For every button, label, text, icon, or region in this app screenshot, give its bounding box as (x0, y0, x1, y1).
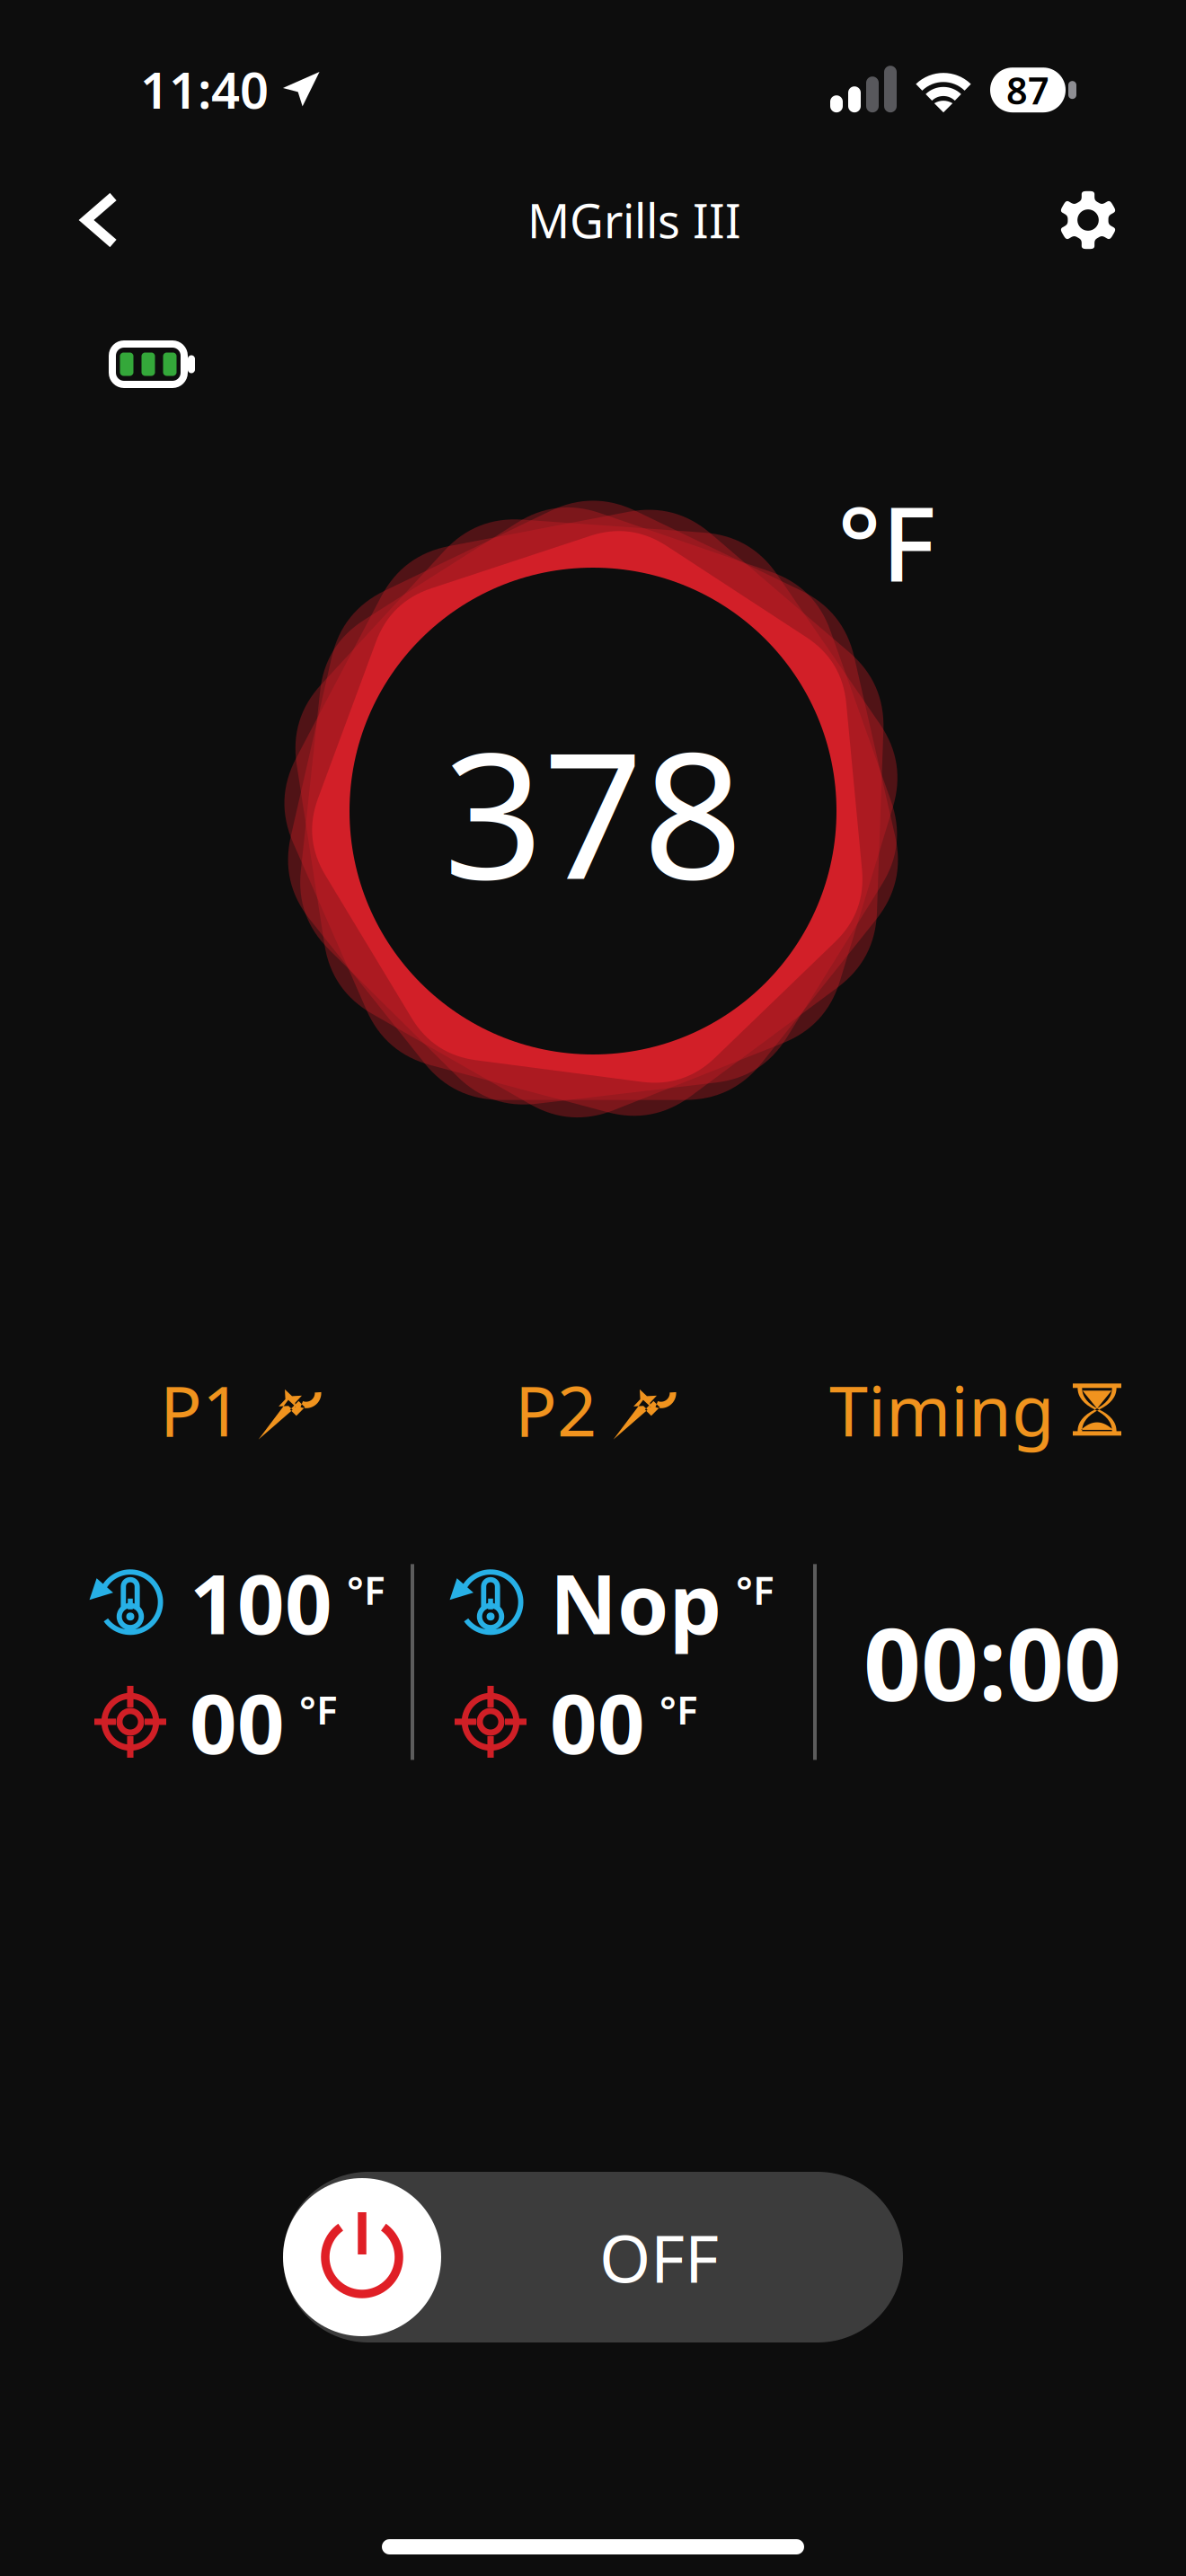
button[interactable]: P2 (515, 1363, 674, 1456)
staticText: °F (837, 473, 936, 610)
staticText: 00 (190, 1667, 285, 1777)
staticText: °F (736, 1563, 774, 1616)
staticText: 00 (550, 1667, 645, 1777)
staticText: 100 (190, 1547, 332, 1657)
button[interactable]: Timing (829, 1363, 1121, 1456)
button[interactable]: P1 (160, 1363, 319, 1456)
staticText: °F (347, 1563, 385, 1616)
staticText: 11:40 (140, 56, 269, 123)
staticText: 87 (1006, 65, 1049, 115)
staticText: OFF (599, 2213, 719, 2301)
staticText: P1 (160, 1363, 242, 1456)
staticText: °F (659, 1683, 698, 1735)
staticText: P2 (515, 1363, 597, 1456)
staticText: 378 (443, 695, 743, 927)
staticText: MGrills III (527, 189, 741, 251)
staticText: Timing (829, 1363, 1055, 1456)
staticText: °F (299, 1683, 338, 1735)
staticText: Nop (550, 1547, 721, 1657)
button[interactable]: Settings (1030, 162, 1146, 278)
button[interactable]: Back (50, 161, 149, 279)
button[interactable]: OFF (283, 2172, 903, 2342)
staticText: 00:00 (863, 1595, 1121, 1729)
